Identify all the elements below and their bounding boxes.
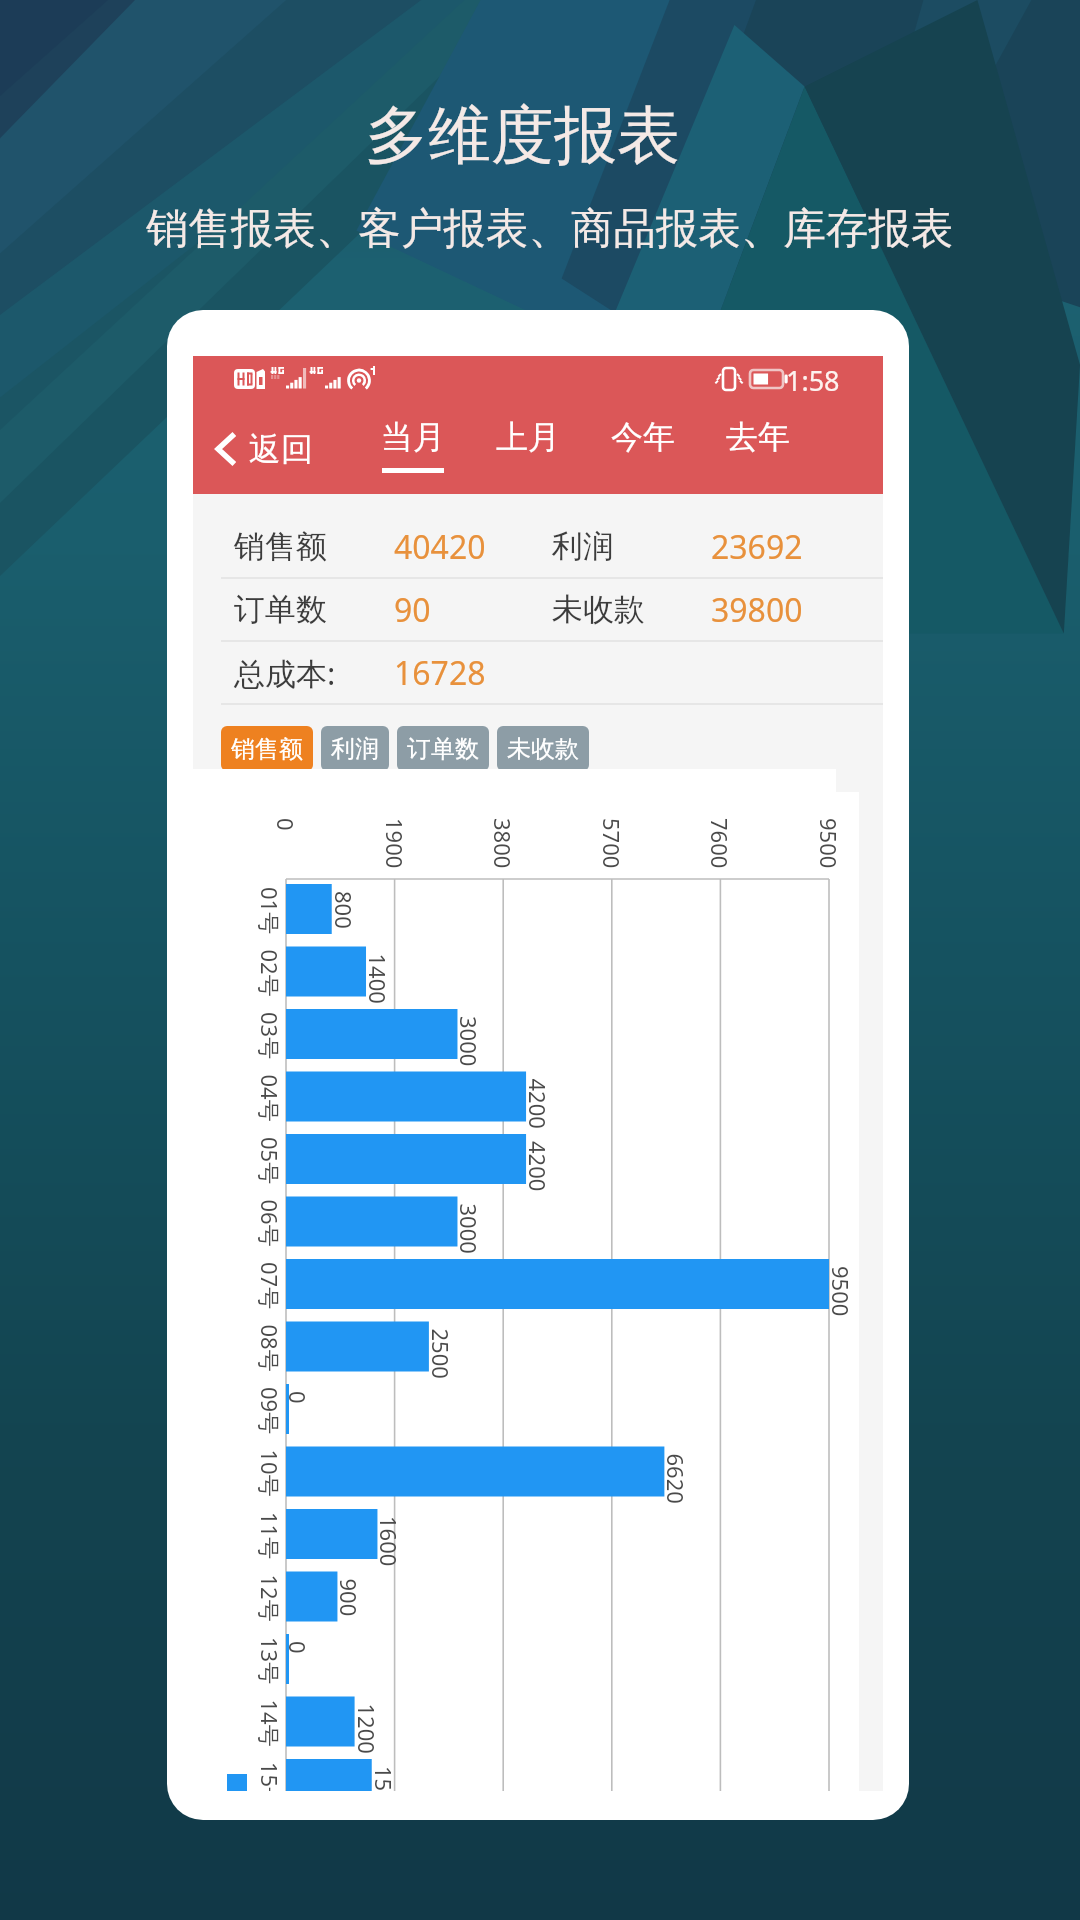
button[interactable]: 销售额 [193, 516, 883, 577]
staticText: 销售额 [234, 527, 327, 566]
staticText: 16728 [394, 651, 486, 695]
button[interactable]: 上月 [470, 404, 585, 494]
staticText: 订单数 [407, 734, 479, 764]
button[interactable]: 总成本: [193, 642, 883, 703]
staticText: 销售报表、客户报表、商品报表、库存报表 [146, 202, 954, 256]
staticText: 未收款 [552, 590, 645, 629]
button[interactable]: 销售额柱状图 Sales bar chart [193, 792, 859, 1791]
button[interactable]: 订单数 [397, 726, 489, 771]
button[interactable]: 利润 [321, 726, 389, 771]
staticText: 上月 [496, 417, 560, 457]
button[interactable]: 去年 [700, 404, 815, 494]
staticText: 返回 [249, 429, 313, 469]
button[interactable]: 销售额 [221, 726, 313, 771]
button[interactable]: 未收款 [497, 726, 589, 771]
staticText: 90 [394, 588, 431, 632]
staticText: 订单数 [234, 590, 327, 629]
staticText: 当月 [381, 417, 445, 457]
staticText: 今年 [611, 417, 675, 457]
staticText: 1:58 [786, 362, 840, 399]
staticText: 利润 [552, 527, 614, 566]
button[interactable]: 订单数 [193, 579, 883, 640]
staticText: 多维度报表 [365, 96, 680, 175]
staticText: 销售额 [231, 734, 303, 764]
staticText: 未收款 [507, 734, 579, 764]
staticText: 23692 [711, 525, 803, 569]
staticText: 去年 [726, 417, 790, 457]
staticText: 39800 [711, 588, 803, 632]
button[interactable]: 今年 [585, 404, 700, 494]
button[interactable]: 返回 Back [193, 404, 327, 494]
button[interactable]: 当月 [355, 404, 470, 494]
staticText: 总成本: [234, 652, 336, 694]
staticText: 利润 [331, 734, 379, 764]
staticText: 40420 [394, 525, 486, 569]
